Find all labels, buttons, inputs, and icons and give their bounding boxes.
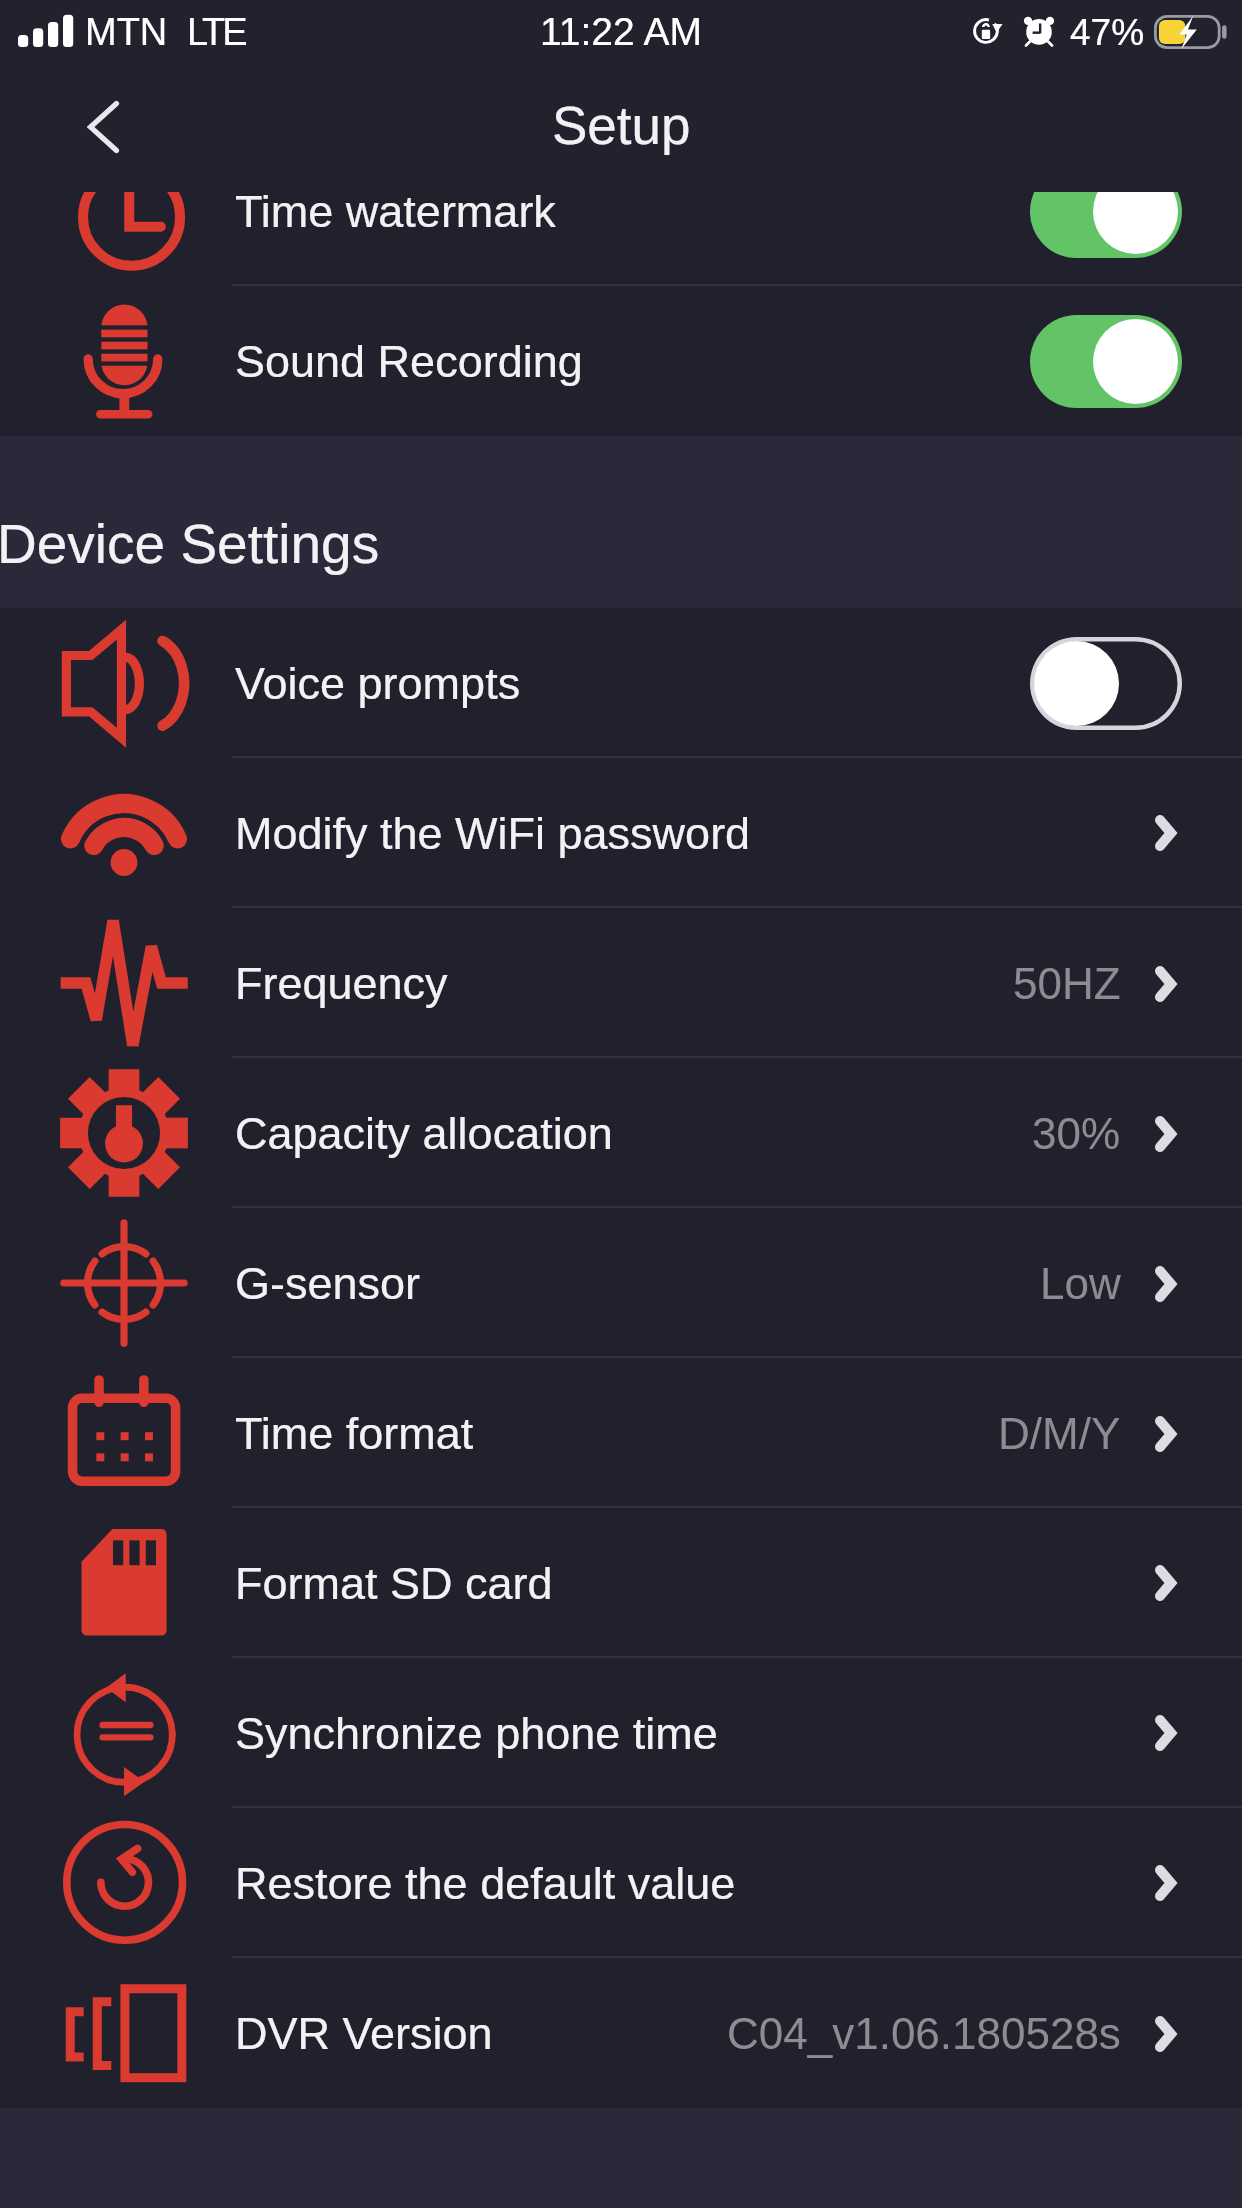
staticText: G-sensor xyxy=(235,1258,421,1308)
staticText: 50HZ xyxy=(1013,959,1121,1008)
button[interactable]: Frequency xyxy=(0,908,1242,1058)
staticText: MTN xyxy=(85,11,168,53)
staticText: Format SD card xyxy=(235,1558,553,1608)
button[interactable]: Time watermark xyxy=(0,192,1242,286)
staticText: Device Settings xyxy=(0,513,380,574)
button[interactable]: Time format xyxy=(0,1358,1242,1508)
staticText: Setup xyxy=(552,96,691,155)
button[interactable]: Toggle off xyxy=(1030,637,1182,730)
button[interactable]: Sound Recording xyxy=(0,286,1242,436)
staticText: Voice prompts xyxy=(235,658,521,708)
button[interactable]: Capacity allocation xyxy=(0,1058,1242,1208)
staticText: 11:22 AM xyxy=(540,10,702,54)
staticText: Capacity allocation xyxy=(235,1108,613,1158)
button[interactable]: Restore the default value xyxy=(0,1808,1242,1958)
staticText: Time watermark xyxy=(235,192,556,236)
staticText: 47% xyxy=(1070,12,1145,53)
staticText: C04_v1.06.180528s xyxy=(727,2009,1121,2058)
button[interactable]: G-sensor xyxy=(0,1208,1242,1358)
staticText: Sound Recording xyxy=(235,336,583,386)
staticText: Time format xyxy=(235,1408,474,1458)
button[interactable]: Toggle on xyxy=(1030,192,1182,258)
staticText: LTE xyxy=(187,11,245,53)
button[interactable]: DVR Version xyxy=(0,1958,1242,2108)
button[interactable]: Synchronize phone time xyxy=(0,1658,1242,1808)
button[interactable]: Toggle on xyxy=(1030,315,1182,408)
staticText: Frequency xyxy=(235,958,448,1008)
staticText: Synchronize phone time xyxy=(235,1708,718,1758)
staticText: 30% xyxy=(1032,1109,1121,1158)
button[interactable]: Voice prompts xyxy=(0,608,1242,758)
staticText: Modify the WiFi password xyxy=(235,808,751,858)
staticText: DVR Version xyxy=(235,2008,493,2058)
staticText: Low xyxy=(1040,1259,1121,1308)
staticText: Restore the default value xyxy=(235,1858,736,1908)
button[interactable]: Modify the WiFi password xyxy=(0,758,1242,908)
button[interactable]: Format SD card xyxy=(0,1508,1242,1658)
button[interactable]: Back xyxy=(0,70,207,192)
staticText: D/M/Y xyxy=(998,1409,1121,1458)
